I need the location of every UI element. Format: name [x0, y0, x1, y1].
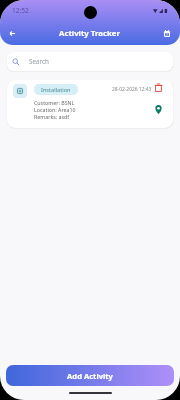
staticText: 28-02-2026 12:43 [112, 86, 152, 93]
staticText: Search [29, 57, 49, 66]
staticText: Customer: BSNL [34, 99, 75, 106]
button[interactable]: Add Activity [6, 365, 174, 386]
button[interactable]: Back [3, 24, 21, 42]
staticText: Installation [41, 86, 71, 94]
staticText: Remarks: asdf [34, 113, 70, 120]
staticText: Activity Tracker [59, 28, 120, 39]
button[interactable]: Calendar [158, 24, 176, 42]
staticText: Location: Area10 [34, 106, 76, 113]
button[interactable]: Delete [152, 81, 164, 93]
button[interactable]: Installation [7, 80, 173, 128]
button[interactable]: Location [152, 103, 164, 115]
staticText: 12:52 [12, 6, 29, 15]
button[interactable]: Search [7, 52, 173, 71]
staticText: Add Activity [67, 371, 113, 381]
